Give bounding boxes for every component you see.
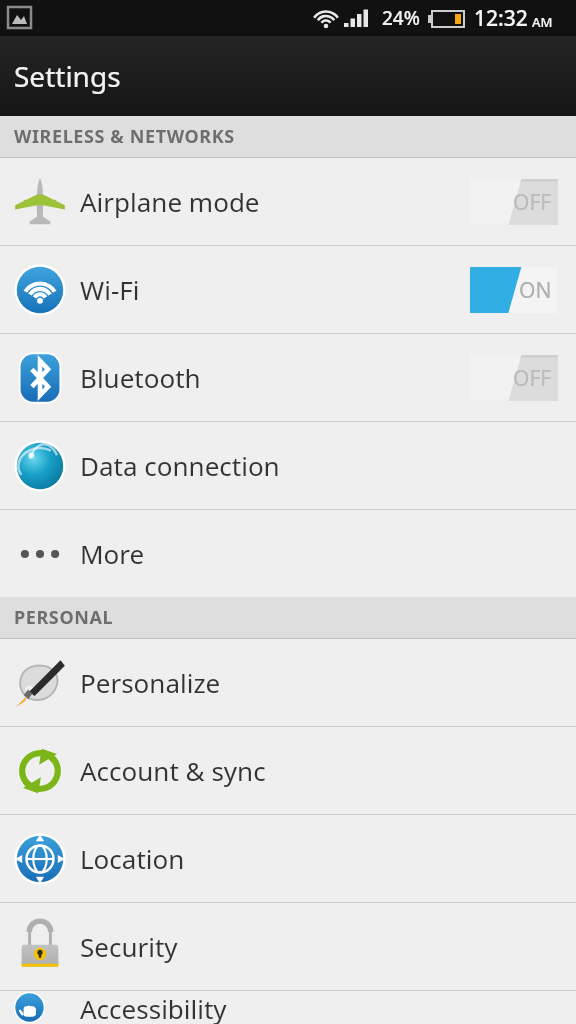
button[interactable]: Data connection bbox=[0, 422, 576, 509]
button[interactable]: Accessibility bbox=[0, 991, 576, 1024]
staticText: Personalize bbox=[80, 665, 576, 700]
button[interactable]: Security bbox=[0, 903, 576, 990]
staticText: 24% bbox=[382, 5, 420, 31]
staticText: Location bbox=[80, 841, 576, 876]
staticText: Wi-Fi bbox=[80, 272, 470, 307]
staticText: Settings bbox=[14, 57, 121, 95]
button[interactable]: Switch off bbox=[470, 355, 558, 401]
staticText: Account & sync bbox=[80, 753, 576, 788]
button[interactable]: Location bbox=[0, 815, 576, 902]
staticText: Accessibility bbox=[80, 991, 576, 1024]
staticText: ON bbox=[519, 276, 552, 305]
staticText: More bbox=[80, 536, 576, 571]
button[interactable]: Account & sync bbox=[0, 727, 576, 814]
staticText: OFF bbox=[513, 188, 552, 217]
staticText: Bluetooth bbox=[80, 360, 470, 395]
button[interactable]: Bluetooth bbox=[0, 334, 576, 421]
button[interactable]: Wi-Fi bbox=[0, 246, 576, 333]
button[interactable]: Switch on bbox=[470, 267, 558, 313]
staticText: Airplane mode bbox=[80, 184, 470, 219]
staticText: 12:32 bbox=[474, 4, 528, 33]
button[interactable]: Switch off bbox=[470, 179, 558, 225]
button[interactable]: Airplane mode bbox=[0, 158, 576, 245]
button[interactable]: Personalize bbox=[0, 639, 576, 726]
staticText: AM bbox=[532, 13, 553, 31]
staticText: Data connection bbox=[80, 448, 576, 483]
button[interactable]: More bbox=[0, 510, 576, 597]
staticText: PERSONAL bbox=[14, 605, 114, 630]
staticText: OFF bbox=[513, 364, 552, 393]
staticText: WIRELESS & NETWORKS bbox=[14, 124, 235, 149]
staticText: Security bbox=[80, 929, 576, 964]
